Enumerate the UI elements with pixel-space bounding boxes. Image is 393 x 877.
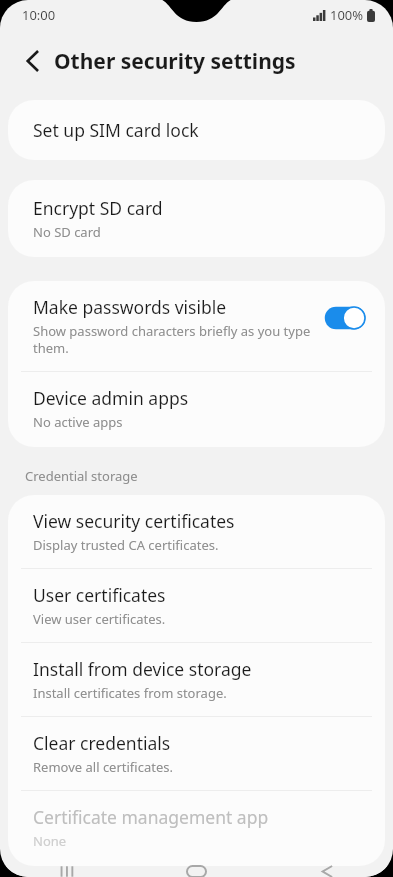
button[interactable]: View security certificates <box>8 495 385 568</box>
staticText: User certificates <box>33 583 166 607</box>
button[interactable]: Recent apps <box>0 866 131 877</box>
button[interactable]: Device admin apps <box>8 372 385 447</box>
staticText: Show password characters briefly as you … <box>33 322 311 357</box>
staticText: 100% <box>330 6 364 24</box>
button[interactable]: Certificate management app <box>8 791 385 866</box>
button[interactable]: Clear credentials <box>8 717 385 790</box>
button[interactable]: Install from device storage <box>8 643 385 716</box>
button[interactable]: Set up SIM card lock <box>8 100 385 160</box>
staticText: Install from device storage <box>33 657 252 681</box>
staticText: Set up SIM card lock <box>33 118 199 142</box>
button[interactable]: Make passwords visible <box>8 281 385 371</box>
staticText: Clear credentials <box>33 731 171 755</box>
button[interactable]: Home <box>131 866 262 877</box>
staticText: Remove all certificates. <box>33 758 173 776</box>
staticText: Install certificates from storage. <box>33 684 227 702</box>
staticText: Certificate management app <box>33 805 269 829</box>
staticText: 10:00 <box>22 6 56 24</box>
staticText: No active apps <box>33 413 123 431</box>
staticText: View user certificates. <box>33 610 166 628</box>
staticText: Encrypt SD card <box>33 196 163 220</box>
button[interactable]: Back <box>14 42 52 80</box>
button[interactable]: Make passwords visible toggle <box>323 305 367 331</box>
staticText: Device admin apps <box>33 386 189 410</box>
button[interactable]: Back <box>262 866 393 877</box>
staticText: No SD card <box>33 223 101 241</box>
button[interactable]: User certificates <box>8 569 385 642</box>
staticText: Credential storage <box>25 467 393 485</box>
staticText: None <box>33 832 67 850</box>
button[interactable]: Encrypt SD card <box>8 180 385 257</box>
staticText: Make passwords visible <box>33 295 227 319</box>
staticText: Other security settings <box>54 47 296 76</box>
staticText: Display trusted CA certificates. <box>33 536 219 554</box>
staticText: View security certificates <box>33 509 235 533</box>
